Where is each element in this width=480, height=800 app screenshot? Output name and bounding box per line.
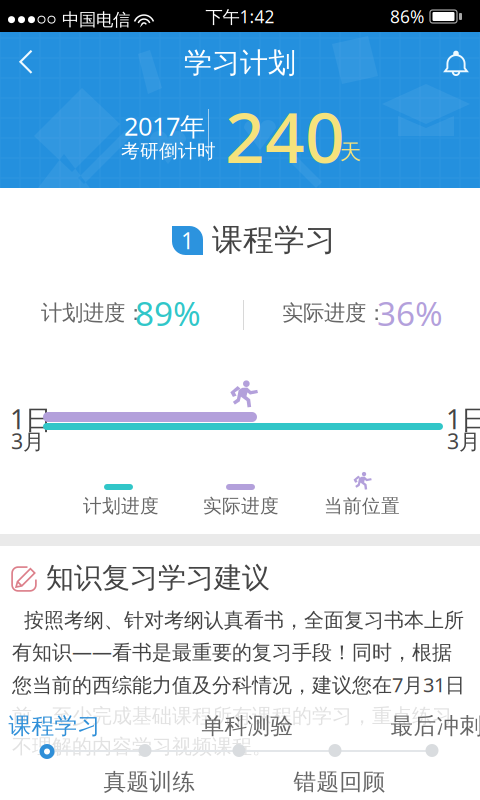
button[interactable]: Notifications (0, 32, 480, 188)
staticText: 按照考纲、针对考纲认真看书，全面复习书本上所有知识——看书是最重要的复习手段！同… (12, 608, 465, 759)
staticText: 实际进度： (282, 300, 387, 326)
staticText: 计划进度 (83, 494, 159, 517)
staticText: 3月 (447, 427, 480, 455)
staticText: 计划进度： (41, 300, 146, 326)
staticText: 240 (225, 90, 345, 182)
button[interactable]: Back (0, 32, 480, 188)
staticText: 真题训练 (103, 768, 195, 796)
staticText: 课程学习 (212, 221, 336, 259)
staticText: 单科测验 (201, 712, 293, 740)
staticText: 1 (181, 225, 194, 255)
staticText: 3月 (11, 427, 44, 455)
staticText: 实际进度 (203, 494, 279, 517)
staticText: 天 (340, 139, 361, 165)
staticText: 中国电信 (62, 9, 130, 30)
staticText: 86% (390, 5, 424, 28)
staticText: 89% (135, 291, 201, 335)
staticText: 学习计划 (184, 46, 296, 80)
staticText: 当前位置 (324, 494, 400, 517)
staticText: 1日 (10, 401, 52, 437)
staticText: 1日 (446, 401, 480, 437)
staticText: 错题回顾 (293, 768, 385, 796)
staticText: 最后冲刺 (390, 712, 480, 740)
staticText: 36% (377, 291, 443, 335)
staticText: 下午1:42 (205, 5, 274, 28)
staticText: 2017年 (124, 109, 205, 143)
staticText: 知识复习学习建议 (46, 561, 270, 595)
staticText: 考研倒计时 (121, 139, 216, 162)
staticText: 课程学习 (8, 712, 100, 740)
